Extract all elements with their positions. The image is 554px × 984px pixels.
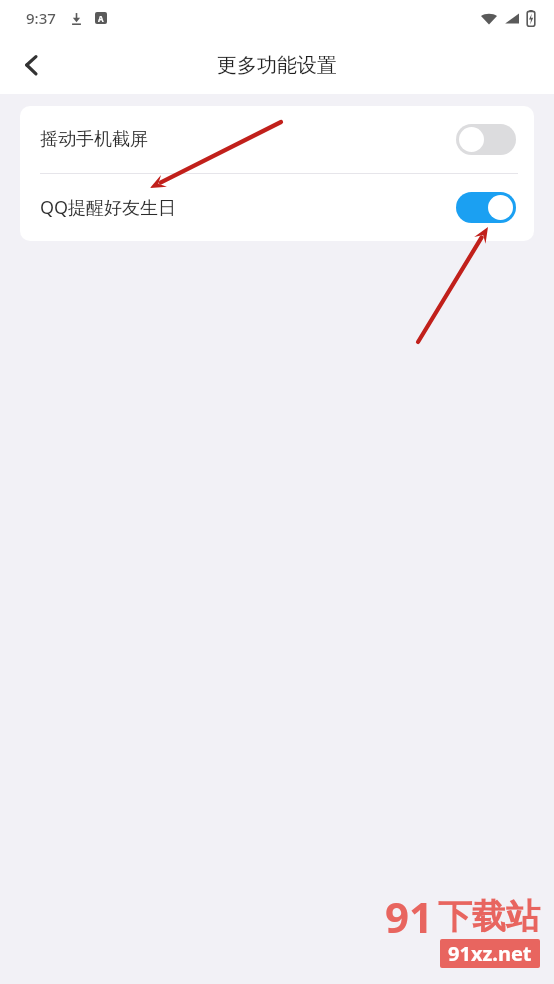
staticText: 摇动手机截屏 bbox=[40, 128, 148, 151]
staticText: 91xz.net bbox=[448, 940, 532, 967]
staticText: 下载站 bbox=[438, 895, 540, 938]
staticText: 91 bbox=[385, 888, 434, 945]
button[interactable]: Back bbox=[8, 41, 56, 89]
staticText: QQ提醒好友生日 bbox=[40, 195, 177, 220]
button[interactable]: Toggle off bbox=[456, 124, 516, 155]
button[interactable]: Toggle on bbox=[456, 192, 516, 223]
button[interactable]: 摇动手机截屏 bbox=[20, 106, 534, 173]
staticText: 9:37 bbox=[26, 8, 56, 28]
button[interactable]: QQ提醒好友生日 bbox=[20, 174, 534, 241]
staticText: 更多功能设置 bbox=[217, 53, 337, 78]
staticText: A bbox=[98, 13, 104, 24]
